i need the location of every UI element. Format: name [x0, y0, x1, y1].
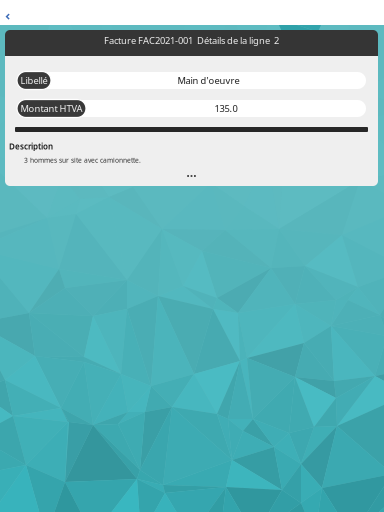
button[interactable]: Back: [0, 0, 24, 25]
staticText: Facture FAC2021-001 Détails de la ligne …: [104, 34, 279, 47]
staticText: Description: [9, 141, 53, 152]
staticText: 3 hommes sur site avec camionnette.: [24, 156, 141, 164]
staticText: 135.0: [214, 102, 237, 115]
staticText: Libellé: [20, 74, 47, 87]
staticText: Main d'oeuvre: [177, 74, 239, 87]
staticText: Montant HTVA: [20, 102, 82, 115]
